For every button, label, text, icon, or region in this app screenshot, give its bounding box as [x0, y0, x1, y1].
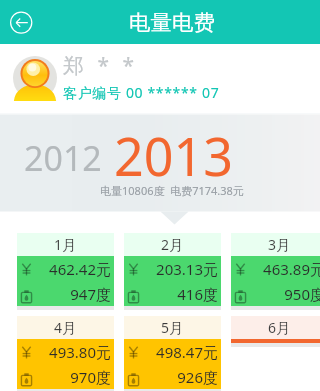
button[interactable]: 5月: [124, 316, 221, 391]
staticText: 电量10806度 电费7174.38元: [100, 183, 244, 198]
staticText: 463.89元: [248, 259, 320, 279]
button[interactable]: Back: [7, 8, 35, 36]
staticText: 926度: [141, 367, 218, 387]
staticText: 3月: [268, 235, 291, 254]
button[interactable]: 6月: [231, 316, 320, 347]
staticText: 950度: [248, 284, 320, 304]
staticText: 1月: [54, 235, 77, 254]
staticText: 2月: [161, 235, 184, 254]
button[interactable]: 郑 * *: [0, 44, 320, 113]
staticText: 客户编号 00 ****** 07: [63, 83, 220, 102]
staticText: 203.13元: [141, 259, 218, 279]
staticText: 462.42元: [34, 259, 111, 279]
button[interactable]: 2月: [124, 233, 221, 310]
button[interactable]: 1月: [17, 233, 114, 310]
button[interactable]: 3月: [231, 233, 320, 310]
staticText: 493.80元: [34, 342, 111, 362]
staticText: 郑 * *: [63, 51, 139, 80]
staticText: 6月: [268, 318, 291, 337]
staticText: 电量电费: [129, 9, 215, 36]
staticText: 970度: [34, 367, 111, 387]
button[interactable]: 2013: [114, 120, 233, 191]
staticText: 498.47元: [141, 342, 218, 362]
staticText: 416度: [141, 284, 218, 304]
staticText: 4月: [54, 318, 77, 337]
staticText: 5月: [161, 318, 184, 337]
button[interactable]: 4月: [17, 316, 114, 391]
staticText: 947度: [34, 284, 111, 304]
button[interactable]: 2012: [24, 135, 102, 181]
